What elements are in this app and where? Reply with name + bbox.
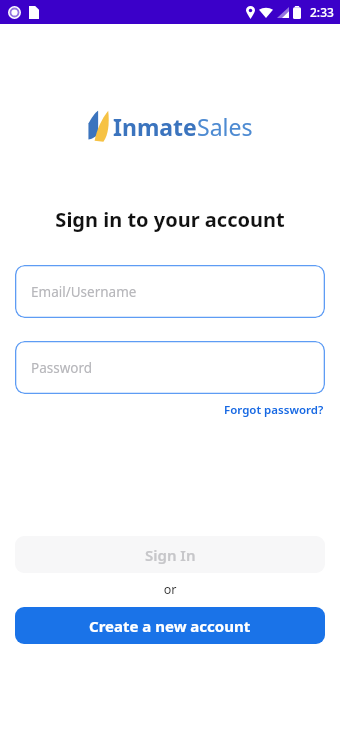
staticText: Inmate bbox=[113, 111, 197, 142]
button[interactable]: Sign In bbox=[15, 536, 325, 573]
staticText: Forgot password? bbox=[224, 402, 324, 418]
button[interactable]: Password bbox=[15, 341, 325, 394]
button[interactable]: Email/Username bbox=[15, 265, 325, 318]
staticText: Sign In bbox=[145, 545, 196, 565]
staticText: Sign in to your account bbox=[0, 206, 340, 233]
button[interactable]: Create a new account bbox=[15, 607, 325, 644]
staticText: 2:33 bbox=[310, 4, 334, 20]
staticText: Password bbox=[31, 359, 93, 377]
staticText: or bbox=[0, 581, 340, 598]
staticText: Email/Username bbox=[31, 283, 137, 301]
staticText: Sales bbox=[197, 111, 253, 142]
button[interactable]: Forgot password? bbox=[222, 401, 326, 419]
staticText: Create a new account bbox=[89, 616, 251, 636]
